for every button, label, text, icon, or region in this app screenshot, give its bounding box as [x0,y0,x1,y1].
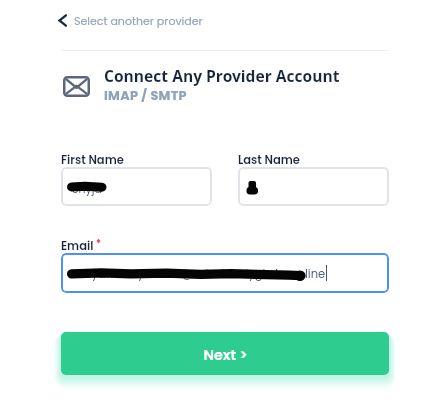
staticText: Email [61,238,94,254]
button[interactable]: Next > [61,332,389,375]
staticText: IMAP / SMTP [104,87,187,105]
other: Back [58,14,67,27]
staticText: line [305,266,326,282]
button[interactable]: Back [54,10,207,31]
button[interactable] [238,167,389,206]
button[interactable] [61,167,212,206]
staticText: Last Name [238,152,300,168]
staticText: Select another provider [74,13,203,28]
staticText: * [94,237,102,250]
button[interactable] [61,253,389,293]
staticText: Shyja [72,181,102,196]
staticText: Connect Any Provider Account [104,65,340,86]
staticText: First Name [61,152,124,168]
staticText: amyamaray.mmm@cdcsbcrdygbd [72,266,278,282]
staticText: Next > [203,345,248,365]
